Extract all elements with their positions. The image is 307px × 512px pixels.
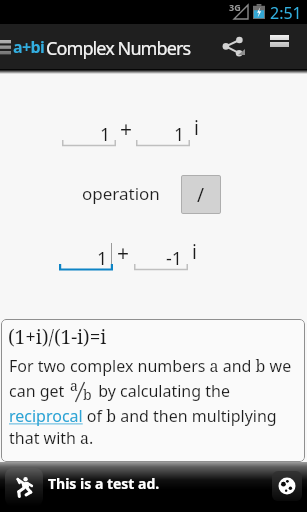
- staticText: -1: [166, 246, 183, 271]
- staticText: +: [117, 239, 130, 268]
- staticText: a: [70, 376, 78, 395]
- button[interactable]: Share: [207, 24, 253, 69]
- staticText: 3G: [229, 1, 241, 13]
- staticText: i: [192, 239, 197, 265]
- staticText: 1: [97, 246, 108, 271]
- button[interactable]: 1: [59, 237, 113, 271]
- staticText: 2:51: [270, 2, 302, 24]
- staticText: i: [194, 115, 199, 141]
- button[interactable]: 1: [136, 113, 190, 147]
- staticText: 1: [174, 122, 185, 147]
- staticText: +: [120, 115, 133, 144]
- staticText: /: [197, 182, 205, 208]
- staticText: b: [83, 385, 92, 404]
- button[interactable]: More options: [260, 24, 307, 69]
- staticText: that with a.: [9, 427, 94, 449]
- button[interactable]: Open website: [272, 471, 302, 501]
- button[interactable]: -1: [134, 237, 188, 271]
- button[interactable]: /: [181, 175, 221, 214]
- staticText: (1+i)/(1-i)=i: [8, 324, 107, 350]
- button[interactable]: 1: [62, 113, 116, 147]
- staticText: For two complex numbers a and b we: [9, 355, 292, 377]
- staticText: Complex Numbers: [46, 36, 191, 61]
- staticText: This is a test ad.: [48, 474, 160, 493]
- button[interactable]: This is a test ad.: [0, 462, 307, 512]
- staticText: 1: [100, 122, 111, 147]
- staticText: reciprocal of b and then multiplying: [9, 405, 277, 427]
- staticText: can get: [9, 380, 69, 402]
- staticText: a+bi: [13, 36, 45, 58]
- staticText: operation: [82, 182, 160, 205]
- staticText: by calculating the: [94, 380, 230, 402]
